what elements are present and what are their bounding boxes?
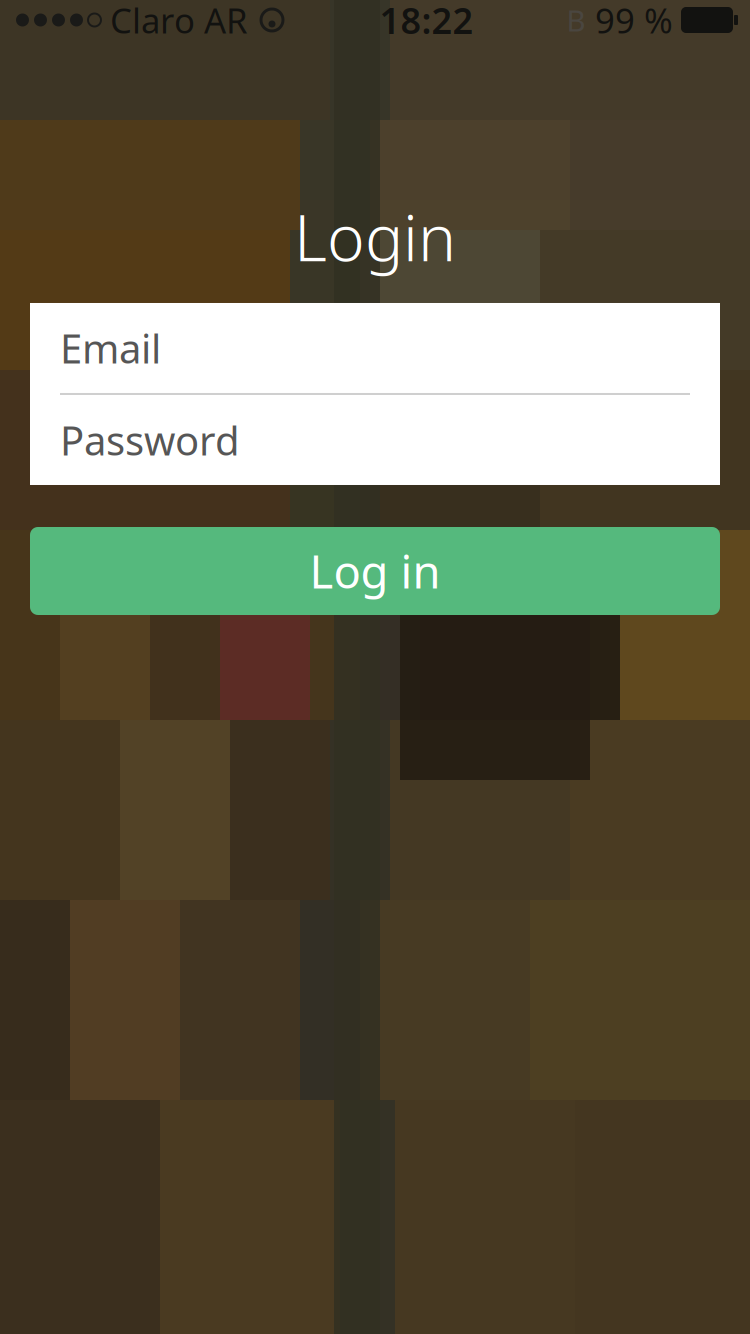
staticText: B (566, 0, 585, 39)
staticText: Claro AR (110, 0, 248, 43)
button[interactable]: Log in (30, 527, 720, 615)
staticText: Login (294, 194, 456, 279)
staticText: 99 % (595, 0, 673, 43)
staticText: Password (60, 413, 240, 466)
staticText: Email (60, 321, 161, 374)
button[interactable]: Password (30, 395, 720, 485)
staticText: 18:22 (379, 0, 473, 44)
button[interactable]: Email (30, 303, 720, 393)
staticText: Log in (309, 541, 440, 601)
